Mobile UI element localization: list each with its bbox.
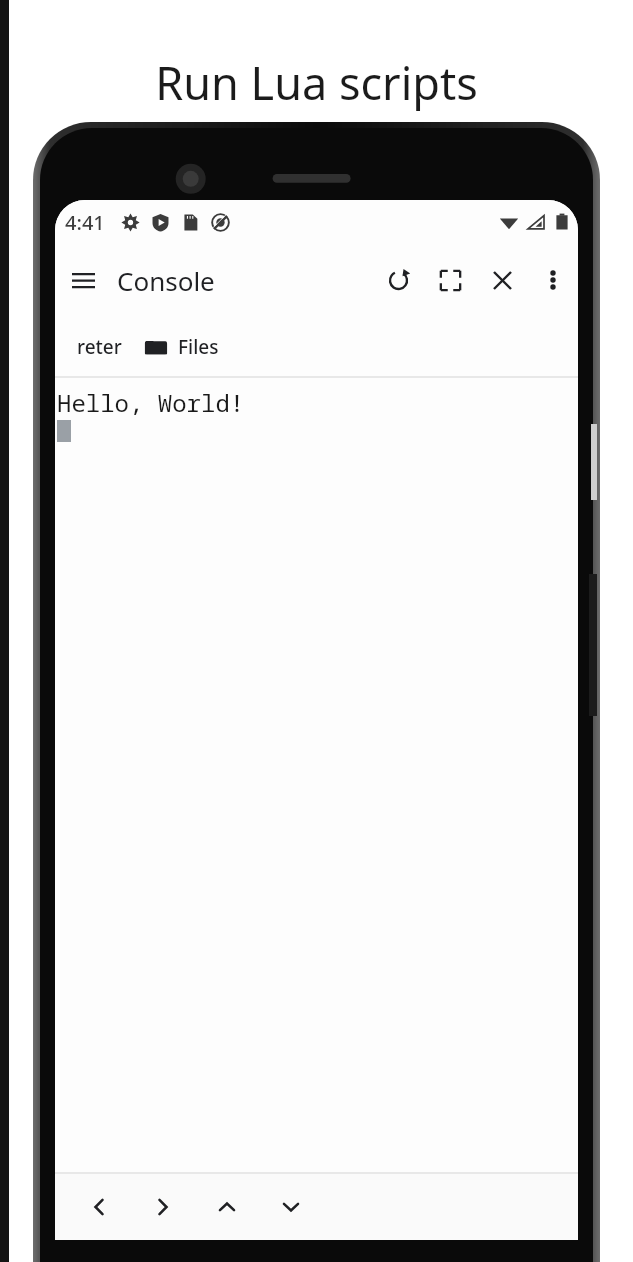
button[interactable]: Back (67, 1174, 131, 1240)
button[interactable]: Scroll down (259, 1174, 323, 1240)
staticText: reter (77, 334, 122, 360)
button[interactable]: More options (528, 255, 578, 305)
staticText: Files (178, 334, 219, 360)
button[interactable]: reter (55, 316, 130, 378)
button[interactable]: Close (476, 254, 528, 306)
button[interactable]: Forward (131, 1174, 195, 1240)
staticText: 4:41 (65, 209, 105, 236)
staticText: Console (117, 263, 215, 298)
staticText: Hello, World! (57, 386, 245, 419)
staticText: Run Lua scripts (0, 52, 633, 113)
button[interactable]: Open navigation menu (55, 252, 111, 308)
button[interactable]: Fullscreen (424, 254, 476, 306)
button[interactable]: Files (130, 316, 578, 378)
button[interactable]: Reload (372, 254, 424, 306)
button[interactable]: Hello, World! (55, 378, 578, 1172)
button[interactable]: Scroll up (195, 1174, 259, 1240)
